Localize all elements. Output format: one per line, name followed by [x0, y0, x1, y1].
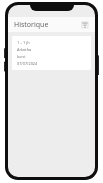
button[interactable]: Filtrer	[79, 19, 90, 30]
staticText: 07/07/2024	[17, 61, 38, 66]
staticText: burst	[17, 54, 26, 59]
staticText: 1 – 1 jh	[17, 40, 30, 45]
staticText: Arkotha	[17, 47, 32, 52]
staticText: Historique	[14, 20, 49, 30]
button[interactable]: 1 – 1 jh	[12, 36, 91, 70]
